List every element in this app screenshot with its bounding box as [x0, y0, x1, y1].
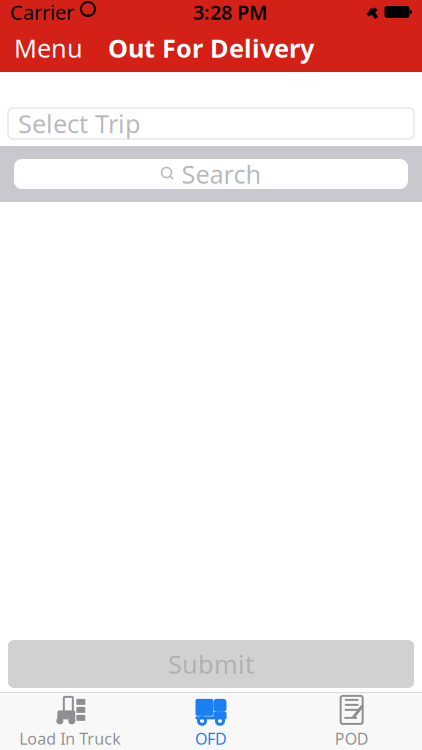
button[interactable]: Menu	[0, 21, 97, 75]
button[interactable]: Search	[0, 146, 422, 202]
staticText: Carrier	[10, 0, 74, 25]
staticText: Menu	[14, 31, 83, 65]
button[interactable]: Select Trip	[8, 108, 414, 139]
button[interactable]: OFD	[141, 689, 281, 750]
staticText: Load In Truck	[19, 728, 121, 749]
button[interactable]: Load In Truck	[0, 689, 141, 750]
staticText: Submit	[168, 647, 254, 681]
staticText: 3:28 PM	[193, 0, 268, 25]
staticText: OFD	[195, 728, 227, 749]
staticText: POD	[335, 728, 369, 749]
button[interactable]: Submit	[8, 640, 414, 688]
staticText: Search	[181, 157, 261, 191]
button[interactable]: POD	[281, 689, 422, 750]
staticText: Out For Delivery	[108, 31, 314, 65]
staticText: Select Trip	[18, 107, 141, 140]
